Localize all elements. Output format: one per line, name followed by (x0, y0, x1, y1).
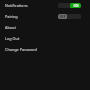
staticText: Log Out (5, 36, 20, 41)
button[interactable]: Change Password (0, 44, 90, 55)
button[interactable]: Log Out (0, 33, 90, 44)
button[interactable]: About (0, 22, 90, 33)
button[interactable]: Notifications (0, 0, 90, 11)
staticText: Change Password (5, 47, 37, 52)
staticText: About (5, 25, 16, 30)
staticText: Pairing (5, 14, 18, 19)
staticText: ON (73, 4, 79, 8)
button[interactable]: Pairing (0, 11, 90, 22)
staticText: Notifications (5, 3, 28, 8)
button[interactable]: Toggle on (58, 3, 81, 8)
staticText: OFF (59, 15, 66, 19)
button[interactable]: Toggle off (58, 14, 81, 19)
